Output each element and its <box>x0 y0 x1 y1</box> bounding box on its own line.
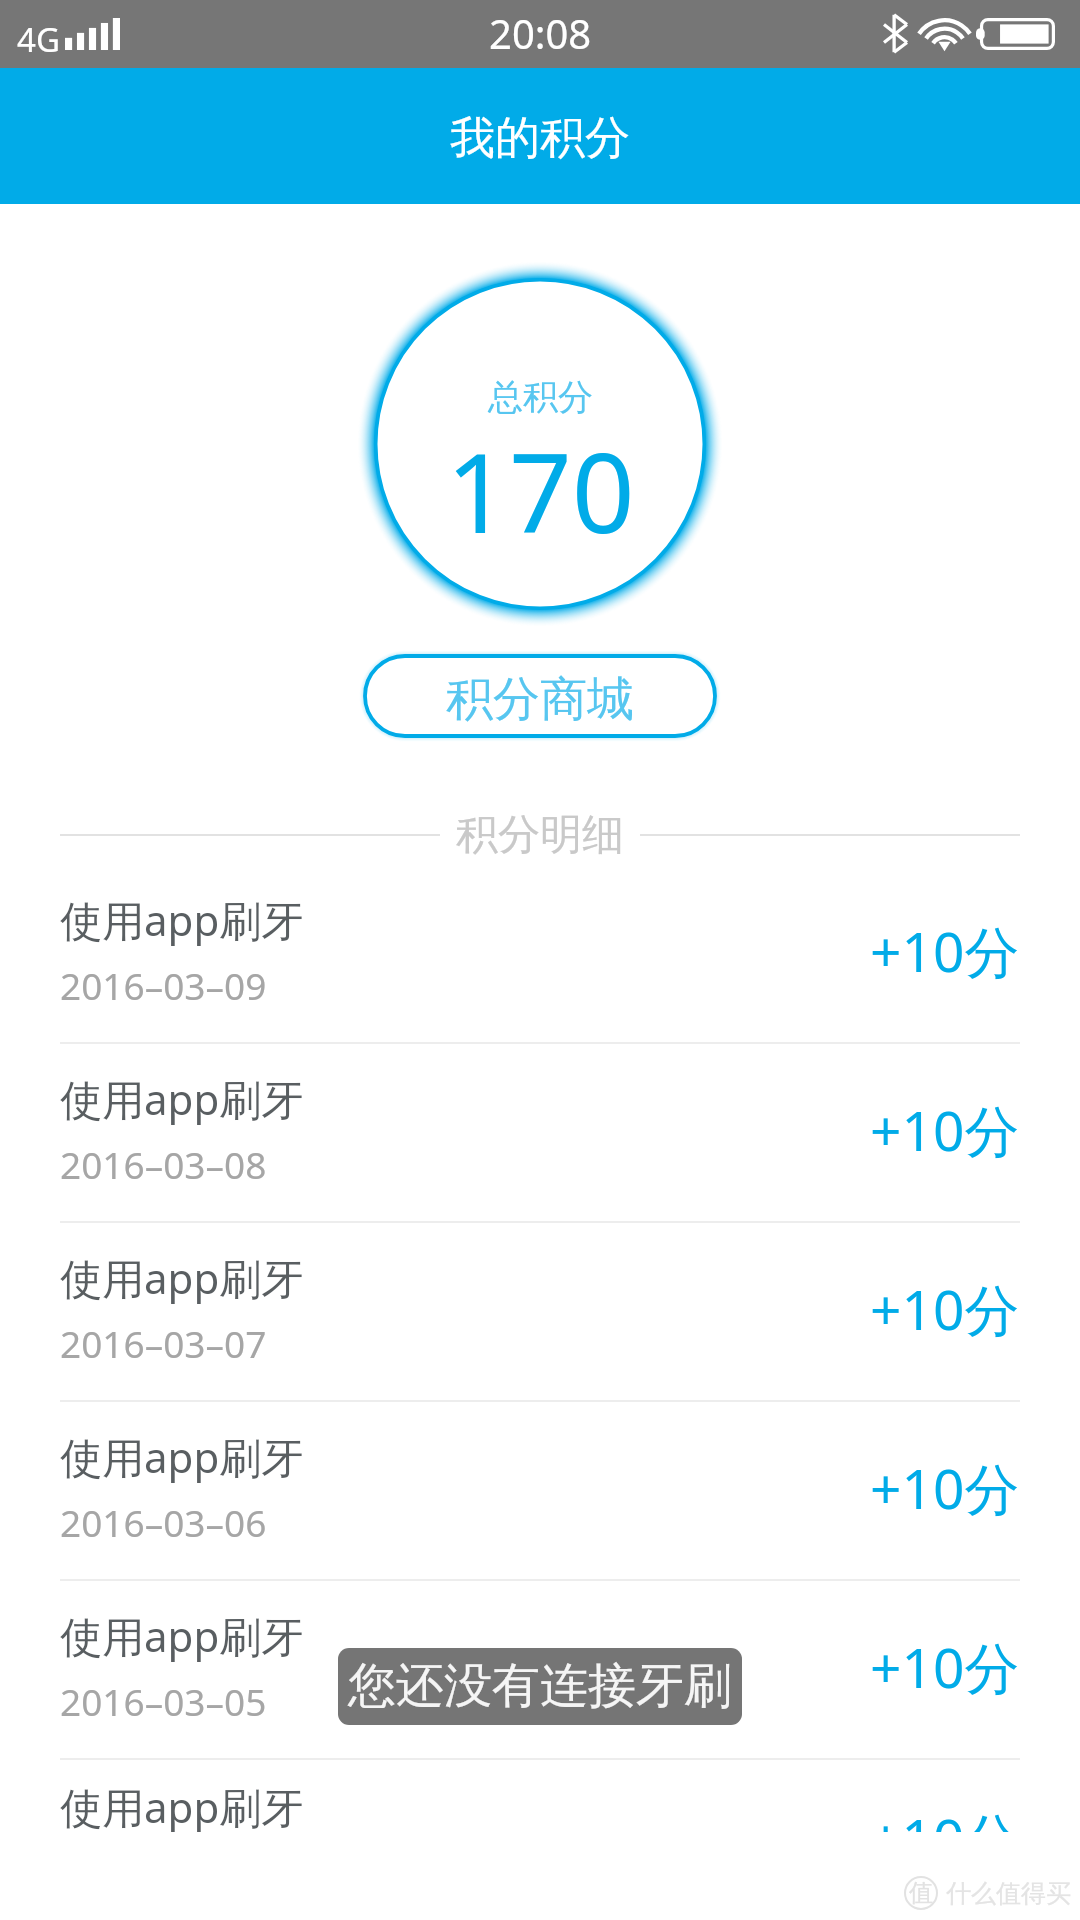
button[interactable]: 使用app刷牙 <box>0 1223 1080 1402</box>
staticText: 2016–03–08 <box>60 1139 267 1189</box>
staticText: 使用app刷牙 <box>60 1070 304 1127</box>
staticText: 2016–03–07 <box>60 1318 267 1368</box>
staticText: +10分 <box>870 913 1020 988</box>
staticText: 您还没有连接牙刷 <box>348 1656 732 1716</box>
staticText: 使用app刷牙 <box>60 891 304 948</box>
staticText: +10分 <box>870 1800 1020 1875</box>
staticText: 2016–03–06 <box>60 1497 267 1547</box>
staticText: 我的积分 <box>450 110 630 167</box>
staticText: 积分商城 <box>446 670 634 729</box>
staticText: 2016–03–09 <box>60 960 267 1010</box>
staticText: 总积分 <box>488 375 593 419</box>
staticText: 2016–03–05 <box>60 1676 267 1726</box>
button[interactable]: 使用app刷牙 <box>0 865 1080 1044</box>
other: Wi-Fi <box>922 17 967 49</box>
staticText: 积分明细 <box>456 809 624 862</box>
staticText: 使用app刷牙 <box>60 1428 304 1485</box>
staticText: 值 <box>909 1878 933 1908</box>
staticText: +10分 <box>870 1450 1020 1525</box>
staticText: 使用app刷牙 <box>60 1778 304 1835</box>
staticText: 什么值得买 <box>946 1878 1071 1909</box>
staticText: 4G <box>17 17 60 62</box>
staticText: 20:08 <box>489 6 592 60</box>
other: Battery <box>976 18 1055 50</box>
button[interactable]: 使用app刷牙 <box>0 1402 1080 1581</box>
staticText: 使用app刷牙 <box>60 1249 304 1306</box>
staticText: +10分 <box>870 1092 1020 1167</box>
button[interactable]: 积分商城 <box>363 654 717 738</box>
staticText: 170 <box>446 415 635 565</box>
button[interactable]: 使用app刷牙 <box>0 1581 1080 1760</box>
staticText: 使用app刷牙 <box>60 1607 304 1664</box>
button[interactable]: 使用app刷牙 <box>0 1044 1080 1223</box>
staticText: +10分 <box>870 1629 1020 1704</box>
button[interactable]: 使用app刷牙 <box>0 1760 1080 1920</box>
other: Bluetooth <box>884 14 907 53</box>
staticText: +10分 <box>870 1271 1020 1346</box>
other: Signal strength <box>65 18 120 50</box>
